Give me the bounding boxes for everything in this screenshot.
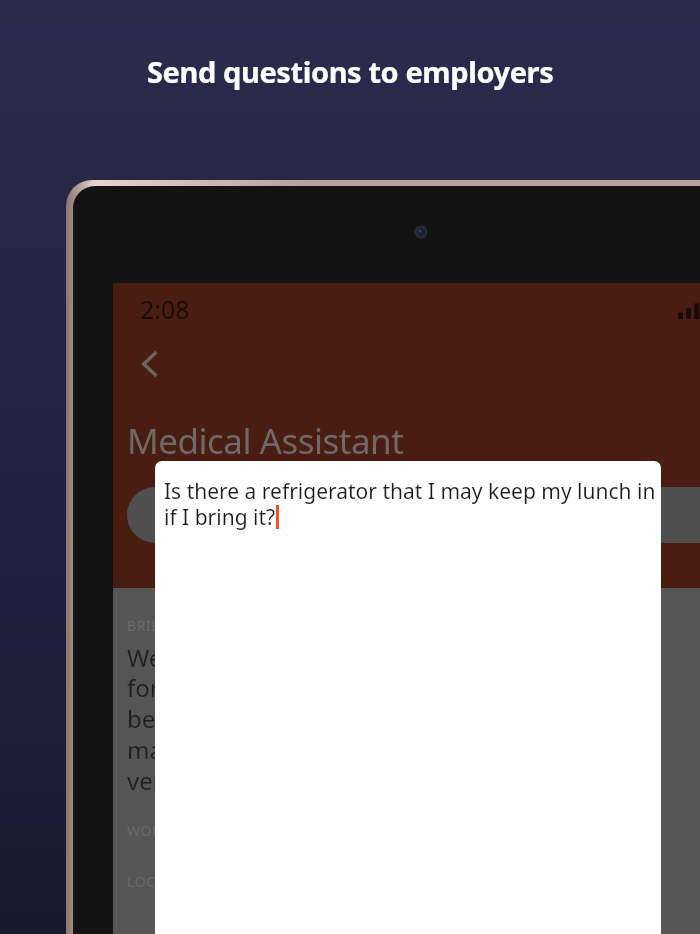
staticText: BRIEF DESCRIPTION bbox=[127, 616, 270, 635]
staticText: 2:08 bbox=[140, 292, 190, 326]
staticText: We are looking for a Medical Assistant t… bbox=[127, 641, 477, 797]
button[interactable]: Back bbox=[121, 335, 179, 393]
staticText: Is there a refrigerator that I may keep … bbox=[164, 477, 661, 532]
staticText: WORK HOURS bbox=[127, 821, 226, 840]
staticText: LOCATION bbox=[127, 872, 201, 891]
staticText: Medical Assistant bbox=[127, 417, 404, 465]
button[interactable] bbox=[127, 487, 700, 543]
staticText: Send questions to employers bbox=[147, 52, 554, 91]
button[interactable]: Is there a refrigerator that I may keep … bbox=[155, 461, 661, 934]
